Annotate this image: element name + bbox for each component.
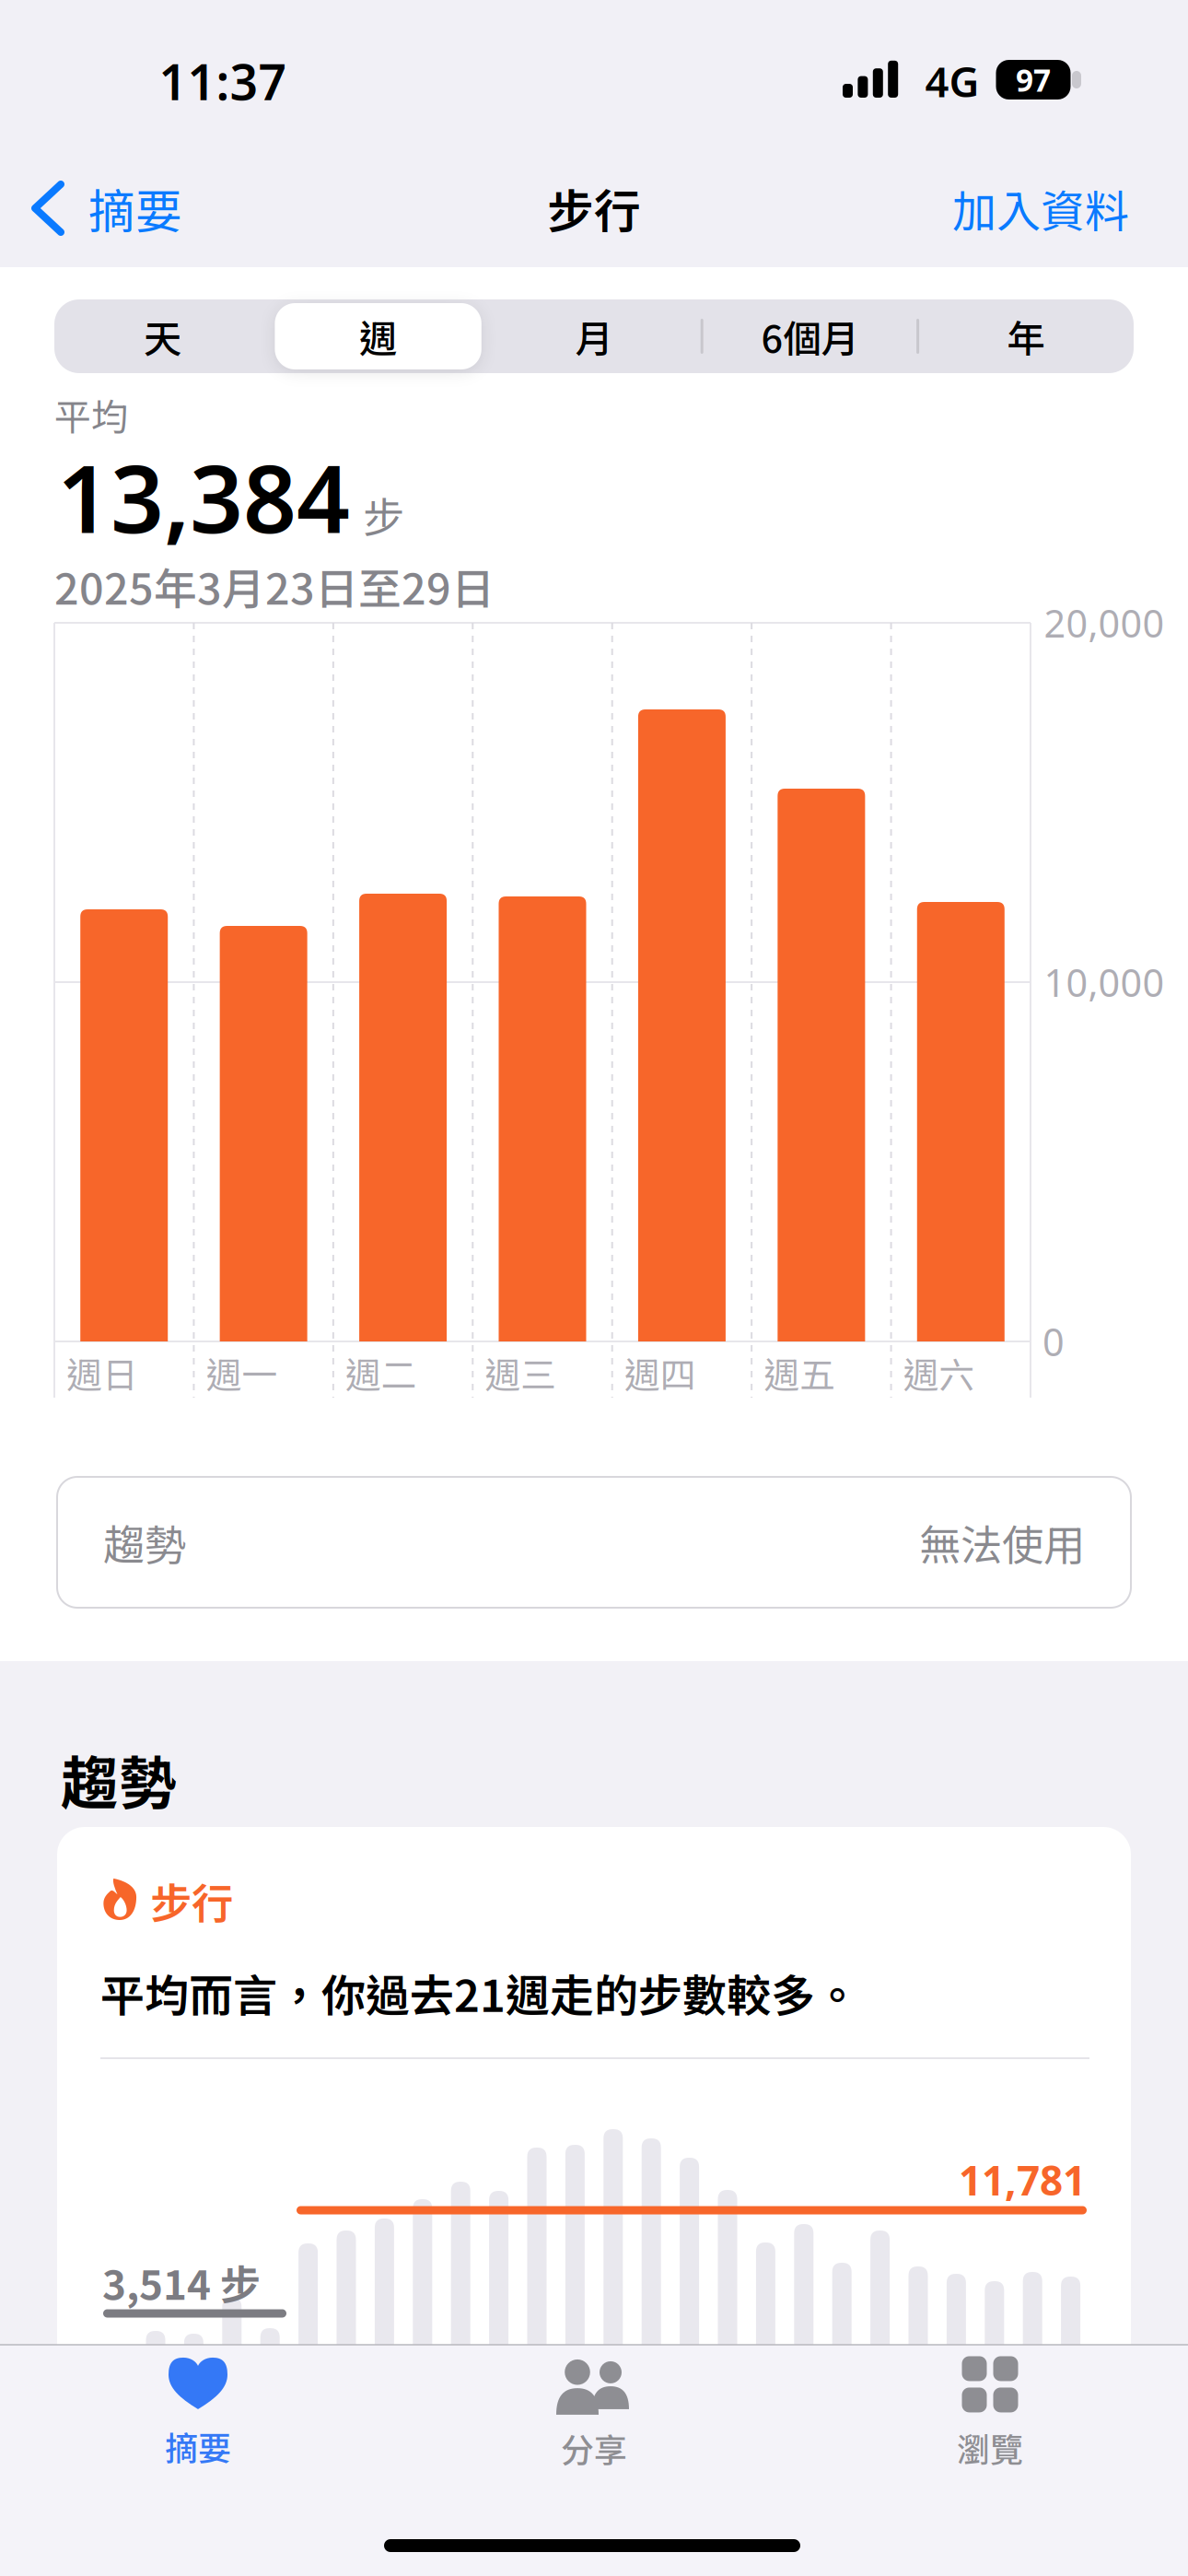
staticText: 2025年3月23日至29日: [54, 555, 495, 617]
button[interactable]: 年: [918, 299, 1134, 373]
staticText: 6個月: [761, 309, 859, 364]
staticText: 趨勢: [103, 1512, 186, 1573]
button[interactable]: 天: [54, 299, 270, 373]
staticText: 加入資料: [952, 176, 1129, 240]
staticText: 摘要: [165, 2422, 231, 2470]
button[interactable]: 週: [270, 299, 486, 373]
button[interactable]: 加入資料: [952, 176, 1129, 240]
staticText: 瀏覽: [957, 2423, 1023, 2471]
staticText: 步行: [547, 174, 641, 242]
staticText: 3,514 步: [102, 2253, 261, 2311]
button[interactable]: 摘要: [35, 174, 182, 242]
staticText: 20,000: [1044, 598, 1165, 648]
staticText: 11:37: [159, 48, 287, 114]
staticText: 無法使用: [919, 1512, 1085, 1573]
staticText: 11,781: [959, 2153, 1086, 2207]
staticText: 步: [363, 485, 404, 545]
staticText: 4G: [925, 53, 979, 109]
button[interactable]: 瀏覽: [957, 2356, 1023, 2471]
button[interactable]: 趨勢: [57, 1477, 1131, 1608]
staticText: 平均: [54, 388, 128, 441]
staticText: 年: [1007, 309, 1045, 364]
staticText: 週日: [66, 1347, 138, 1399]
staticText: 10,000: [1044, 957, 1165, 1007]
button[interactable]: 分享: [553, 2356, 635, 2472]
staticText: 週三: [485, 1347, 557, 1399]
staticText: 摘要: [88, 174, 182, 242]
staticText: 13,384: [57, 435, 350, 559]
staticText: 步行: [150, 1870, 233, 1931]
staticText: 天: [143, 309, 181, 364]
staticText: 平均而言，你過去21週走的步數較多。: [100, 1961, 859, 2025]
staticText: 週四: [624, 1347, 696, 1399]
button[interactable]: 月: [486, 299, 702, 373]
staticText: 週六: [903, 1347, 975, 1399]
button[interactable]: 步行趨勢: [57, 1827, 1131, 2345]
staticText: 趨勢: [61, 1738, 177, 1821]
button[interactable]: 6個月: [702, 299, 918, 373]
staticText: 分享: [561, 2424, 627, 2472]
staticText: 97: [1016, 59, 1051, 100]
staticText: 月: [575, 309, 613, 364]
staticText: 0: [1042, 1316, 1065, 1367]
staticText: 週二: [345, 1347, 417, 1399]
staticText: 週一: [206, 1347, 278, 1399]
button[interactable]: 摘要: [165, 2358, 231, 2470]
staticText: 週五: [764, 1347, 835, 1399]
staticText: 週: [359, 309, 397, 364]
